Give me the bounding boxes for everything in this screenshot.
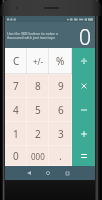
staticText: 3 xyxy=(58,127,64,141)
button[interactable]: C xyxy=(5,48,27,74)
button[interactable]: % xyxy=(49,48,72,74)
staticText: C xyxy=(13,54,20,68)
button[interactable]: Recent apps xyxy=(64,170,70,176)
staticText: 0 xyxy=(79,23,91,49)
staticText: 1 xyxy=(13,127,19,141)
staticText: 0 xyxy=(13,149,19,163)
button[interactable] xyxy=(72,48,95,74)
staticText: 7 xyxy=(13,79,19,93)
staticText: . xyxy=(59,149,62,163)
button[interactable]: +/- xyxy=(27,48,49,74)
button[interactable] xyxy=(72,122,95,146)
staticText: 8 xyxy=(35,79,41,93)
button[interactable]: 9 xyxy=(49,74,72,98)
button[interactable]: . xyxy=(49,146,72,166)
staticText: 5 xyxy=(35,103,41,117)
staticText: 2 xyxy=(35,127,41,141)
button[interactable]: 1 xyxy=(5,122,27,146)
staticText: 6 xyxy=(58,103,64,117)
button[interactable]: 4 xyxy=(5,98,27,122)
staticText: 4 xyxy=(13,103,19,117)
button[interactable] xyxy=(72,146,95,166)
staticText: +/- xyxy=(33,56,44,67)
button[interactable] xyxy=(72,74,95,98)
staticText: 000 xyxy=(31,151,45,162)
button[interactable]: 3 xyxy=(49,122,72,146)
staticText: Use the 000 button to enter a thousand w… xyxy=(7,31,58,40)
button[interactable]: Back xyxy=(26,170,32,176)
button[interactable]: 000 xyxy=(27,146,49,166)
staticText: 9 xyxy=(58,79,64,93)
button[interactable]: 0 xyxy=(5,146,27,166)
button[interactable]: 2 xyxy=(27,122,49,146)
button[interactable] xyxy=(72,98,95,122)
staticText: % xyxy=(56,54,65,68)
button[interactable]: 8 xyxy=(27,74,49,98)
button[interactable]: 5 xyxy=(27,98,49,122)
button[interactable]: 6 xyxy=(49,98,72,122)
button[interactable]: Home xyxy=(45,170,51,176)
button[interactable]: 7 xyxy=(5,74,27,98)
